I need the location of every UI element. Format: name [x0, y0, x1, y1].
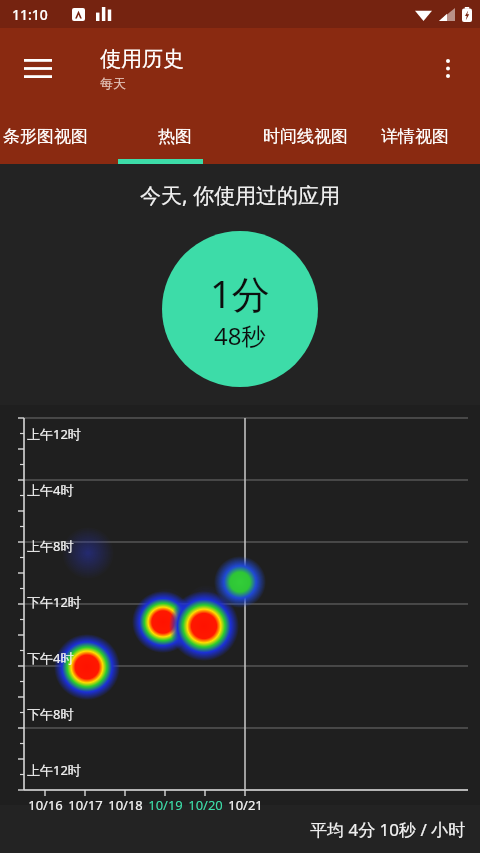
staticText: 详情视图 — [381, 126, 449, 147]
staticText: 10/21 — [228, 796, 263, 814]
staticText: 10/18 — [108, 796, 143, 814]
staticText: 每天 — [100, 75, 126, 91]
staticText: 时间线视图 — [263, 126, 348, 147]
button[interactable]: 热图 — [118, 108, 232, 164]
button[interactable]: 1分 — [162, 231, 318, 387]
staticText: 1分 — [210, 267, 270, 319]
staticText: 11:10 — [12, 5, 48, 24]
staticText: 条形图视图 — [3, 126, 88, 147]
staticText: 上午12时 — [27, 761, 81, 779]
staticText: 使用历史 — [100, 46, 184, 72]
staticText: 上午12时 — [27, 425, 81, 443]
button[interactable]: Open navigation drawer — [12, 42, 64, 94]
staticText: 上午4时 — [27, 481, 74, 499]
button[interactable]: More options — [426, 46, 470, 90]
staticText: 10/20 — [188, 796, 223, 814]
button[interactable]: 条形图视图 — [0, 108, 118, 164]
staticText: 下午8时 — [27, 705, 74, 723]
staticText: 下午12时 — [27, 593, 81, 611]
staticText: 今天, 你使用过的应用 — [140, 181, 341, 210]
staticText: 10/19 — [148, 796, 183, 814]
staticText: 10/17 — [68, 796, 103, 814]
button[interactable]: 时间线视图 — [232, 108, 378, 164]
staticText: 48秒 — [214, 319, 266, 352]
staticText: 10/16 — [28, 796, 63, 814]
button[interactable]: 详情视图 — [378, 108, 452, 164]
staticText: 下午4时 — [27, 649, 74, 667]
staticText: 上午8时 — [27, 537, 74, 555]
staticText: 平均 4分 10秒 / 小时 — [310, 818, 466, 841]
staticText: 热图 — [158, 126, 192, 147]
